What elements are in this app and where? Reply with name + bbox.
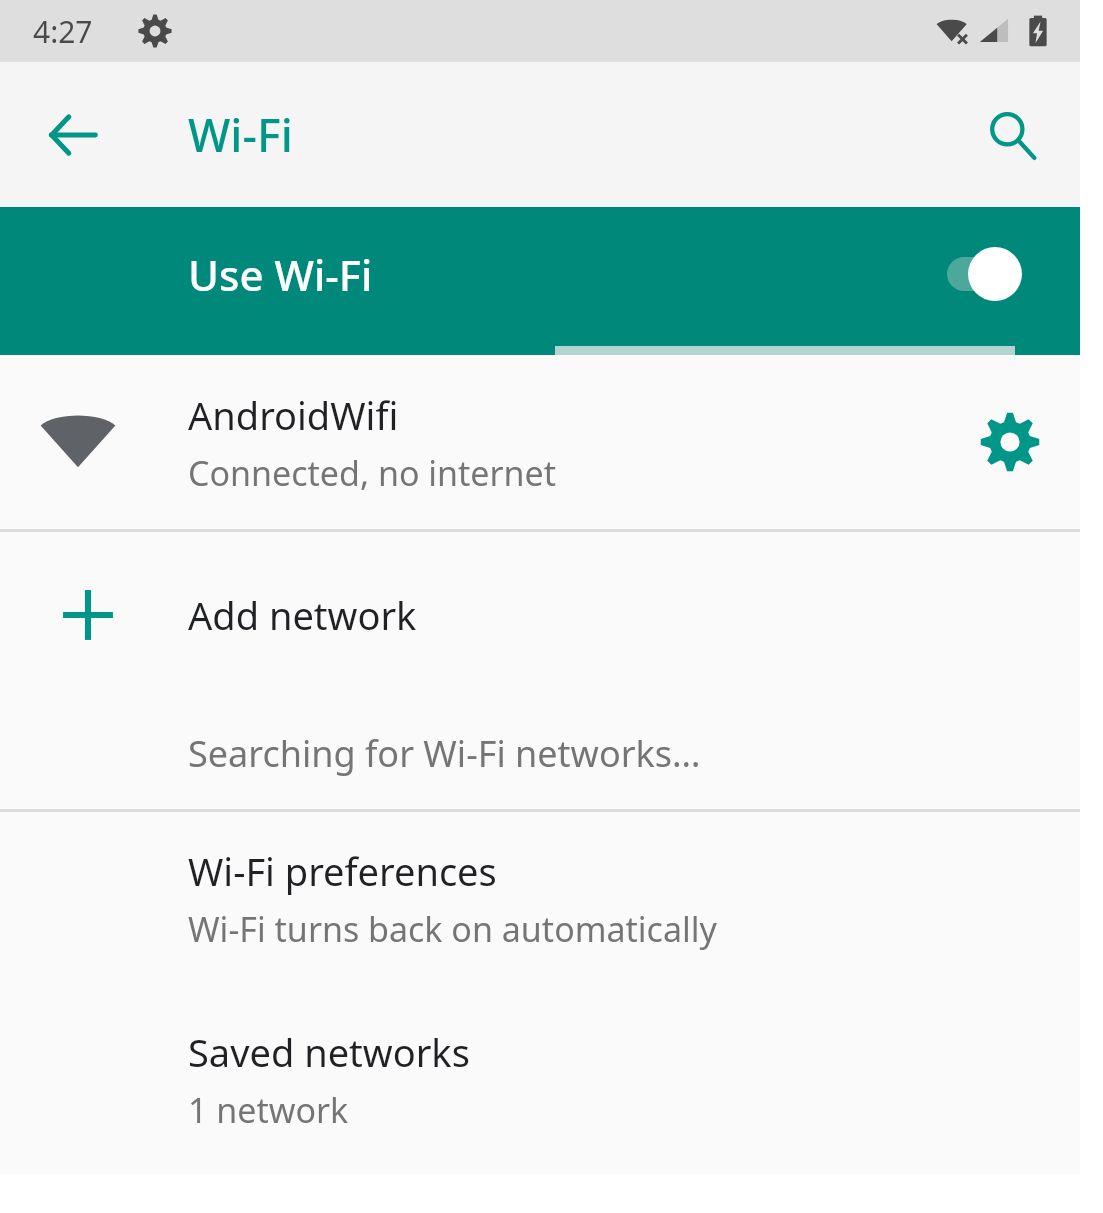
button[interactable]: AndroidWifi (0, 355, 1080, 529)
button[interactable]: Search (964, 87, 1060, 183)
button[interactable]: Network settings (960, 392, 1060, 492)
staticText: Searching for Wi-Fi networks… (188, 729, 701, 778)
button[interactable]: Use Wi-Fi (0, 207, 1080, 355)
staticText: Connected, no internet (188, 450, 557, 496)
button[interactable]: Add network (0, 532, 1080, 697)
button[interactable]: Back (28, 90, 118, 180)
button[interactable]: Saved networks (0, 1001, 1080, 1174)
staticText: Use Wi-Fi (188, 246, 373, 303)
staticText: Wi-Fi (188, 104, 293, 165)
staticText: AndroidWifi (188, 389, 399, 441)
staticText: Wi-Fi turns back on automatically (188, 906, 717, 952)
staticText: 4:27 (33, 11, 93, 52)
staticText: Saved networks (188, 1026, 470, 1078)
staticText: Add network (188, 589, 417, 641)
staticText: 1 network (188, 1087, 349, 1133)
staticText: Wi-Fi preferences (188, 845, 497, 897)
button[interactable]: Wi-Fi preferences (0, 812, 1080, 1001)
